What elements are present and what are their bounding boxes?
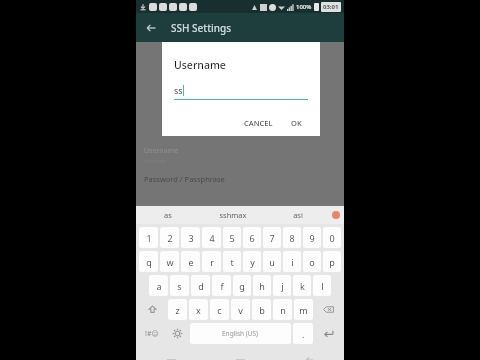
staticText: f: [220, 280, 224, 292]
button[interactable]: o: [303, 251, 321, 272]
staticText: c: [217, 304, 222, 316]
button[interactable]: g: [233, 275, 251, 296]
button[interactable]: More suggestions: [332, 211, 340, 219]
button[interactable]: m: [294, 299, 313, 320]
staticText: x: [196, 304, 201, 316]
button[interactable]: Shift: [139, 299, 166, 320]
button[interactable]: v: [231, 299, 250, 320]
button[interactable]: Backspace: [315, 299, 341, 320]
staticText: l: [321, 280, 324, 292]
button[interactable]: s: [170, 275, 189, 296]
button[interactable]: e: [181, 251, 200, 272]
button[interactable]: x: [189, 299, 208, 320]
staticText: ss: [174, 84, 183, 96]
button[interactable]: 3: [181, 227, 200, 248]
staticText: Username: [144, 146, 179, 156]
button[interactable]: OK: [285, 114, 308, 132]
button[interactable]: .: [293, 323, 313, 344]
staticText: CANCEL: [244, 118, 273, 128]
button[interactable]: z: [168, 299, 187, 320]
staticText: d: [198, 280, 204, 292]
button[interactable]: k: [293, 275, 311, 296]
staticText: 100%: [296, 3, 312, 11]
staticText: 9: [309, 232, 315, 244]
staticText: Username: [174, 58, 226, 72]
staticText: i: [291, 256, 294, 268]
button[interactable]: Back: [136, 13, 165, 42]
staticText: OK: [291, 118, 302, 128]
button[interactable]: 9: [303, 227, 321, 248]
staticText: w: [166, 256, 174, 268]
staticText: p: [329, 256, 335, 268]
staticText: 4: [209, 232, 215, 244]
staticText: y: [250, 256, 255, 268]
staticText: z: [175, 304, 180, 316]
button[interactable]: a: [149, 275, 168, 296]
button[interactable]: 0: [323, 227, 341, 248]
staticText: t: [230, 256, 234, 268]
staticText: asi: [293, 210, 303, 220]
button[interactable]: i: [283, 251, 301, 272]
staticText: 8: [289, 232, 295, 244]
staticText: s: [177, 280, 182, 292]
button[interactable]: p: [323, 251, 341, 272]
button[interactable]: Symbols: [139, 323, 164, 344]
staticText: b: [259, 304, 265, 316]
button[interactable]: sshmax: [200, 206, 265, 224]
button[interactable]: c: [210, 299, 229, 320]
button[interactable]: n: [273, 299, 292, 320]
button[interactable]: q: [139, 251, 158, 272]
staticText: u: [269, 256, 275, 268]
button[interactable]: 2: [160, 227, 179, 248]
staticText: 0: [329, 232, 335, 244]
button[interactable]: as: [136, 206, 200, 224]
button[interactable]: t: [223, 251, 241, 272]
staticText: 6: [249, 232, 255, 244]
staticText: Password / Passphrase: [144, 174, 225, 184]
staticText: 1: [146, 232, 152, 244]
staticText: m: [299, 304, 308, 316]
button[interactable]: b: [252, 299, 271, 320]
staticText: English (US): [222, 329, 259, 338]
staticText: g: [239, 280, 245, 292]
staticText: !#☺: [145, 329, 159, 339]
staticText: as: [164, 210, 172, 220]
staticText: 7: [269, 232, 275, 244]
button[interactable]: asi: [265, 206, 330, 224]
button[interactable]: 5: [223, 227, 241, 248]
button[interactable]: r: [202, 251, 221, 272]
staticText: j: [281, 280, 284, 292]
staticText: v: [238, 304, 243, 316]
button[interactable]: w: [160, 251, 179, 272]
staticText: 5: [229, 232, 235, 244]
staticText: o: [309, 256, 315, 268]
button[interactable]: u: [263, 251, 281, 272]
button[interactable]: Keyboard settings: [166, 323, 188, 344]
staticText: 2: [167, 232, 173, 244]
staticText: q: [146, 256, 152, 268]
button[interactable]: f: [212, 275, 231, 296]
staticText: r: [210, 256, 214, 268]
staticText: a: [156, 280, 162, 292]
staticText: 03:01: [323, 3, 339, 11]
button[interactable]: l: [313, 275, 331, 296]
button[interactable]: CANCEL: [238, 114, 279, 132]
button[interactable]: 7: [263, 227, 281, 248]
button[interactable]: 4: [202, 227, 221, 248]
button[interactable]: y: [243, 251, 261, 272]
staticText: SSH Settings: [171, 21, 232, 35]
button[interactable]: h: [253, 275, 271, 296]
staticText: n: [280, 304, 286, 316]
button[interactable]: 1: [139, 227, 158, 248]
button[interactable]: Enter: [315, 323, 341, 344]
staticText: k: [300, 280, 305, 292]
staticText: e: [188, 256, 194, 268]
button[interactable]: 8: [283, 227, 301, 248]
staticText: .: [302, 328, 305, 340]
staticText: sshmax: [219, 210, 247, 220]
button[interactable]: 6: [243, 227, 261, 248]
button[interactable]: English (US): [190, 323, 291, 344]
button[interactable]: j: [273, 275, 291, 296]
button[interactable]: d: [191, 275, 210, 296]
